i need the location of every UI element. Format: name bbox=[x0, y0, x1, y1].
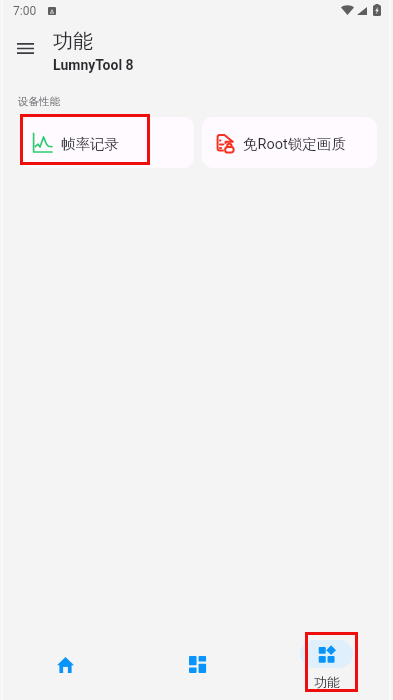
staticText: LumnyTool 8 bbox=[53, 57, 134, 73]
button[interactable]: Home bbox=[0, 617, 131, 700]
button[interactable]: Dashboard bbox=[131, 617, 262, 700]
staticText: 功能 bbox=[53, 29, 93, 54]
button[interactable]: 免Root锁定画质 bbox=[202, 117, 377, 168]
staticText: 帧率记录 bbox=[61, 135, 119, 153]
staticText: 功能 bbox=[314, 674, 340, 690]
staticText: 设备性能 bbox=[18, 95, 60, 108]
button[interactable]: Open navigation menu bbox=[5, 28, 45, 68]
button[interactable]: 帧率记录 bbox=[20, 117, 194, 168]
staticText: 7:00 bbox=[13, 4, 37, 18]
staticText: 免Root锁定画质 bbox=[243, 135, 346, 153]
button[interactable]: 功能 bbox=[261, 617, 392, 700]
